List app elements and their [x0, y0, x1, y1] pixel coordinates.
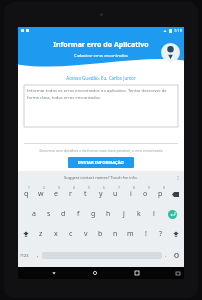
button[interactable]: Back — [49, 268, 59, 278]
button[interactable]: g — [86, 204, 101, 224]
staticText: Informar erro do Aplicativo — [53, 40, 149, 50]
staticText: r — [69, 189, 72, 199]
button[interactable]: d — [56, 204, 71, 224]
button[interactable]: r — [63, 184, 78, 204]
button[interactable]: h — [101, 204, 116, 224]
button[interactable]: ? — [153, 224, 168, 244]
staticText: Descreva com detalhes e da forma mais cl… — [24, 148, 178, 153]
staticText: d — [61, 209, 66, 219]
button[interactable]: Ponto — [162, 246, 170, 265]
staticText: 2 — [43, 186, 45, 190]
button[interactable]: i — [123, 184, 138, 204]
staticText: z — [39, 229, 43, 239]
button[interactable]: Teclado — [174, 269, 182, 277]
button[interactable]: Shift — [168, 224, 183, 244]
button[interactable]: x — [48, 224, 63, 244]
button[interactable]: Emoji — [170, 246, 182, 265]
button[interactable]: ! — [138, 224, 153, 244]
staticText: u — [113, 189, 118, 199]
staticText: v — [84, 229, 88, 239]
staticText: Suggest contact names? Touch for info. — [64, 175, 138, 180]
staticText: n — [113, 229, 118, 239]
button[interactable]: j — [116, 204, 131, 224]
staticText: s — [47, 209, 51, 219]
button[interactable]: n — [108, 224, 123, 244]
button[interactable]: m — [123, 224, 138, 244]
button[interactable]: a — [26, 204, 41, 224]
button[interactable]: f — [71, 204, 86, 224]
staticText: k — [137, 209, 141, 219]
button[interactable]: Perfil do usuário — [161, 43, 180, 62]
button[interactable]: u — [108, 184, 123, 204]
staticText: ?123 — [20, 253, 29, 258]
staticText: x — [54, 229, 58, 239]
staticText: l — [153, 209, 155, 219]
button[interactable]: w — [33, 184, 48, 204]
button[interactable]: b — [93, 224, 108, 244]
button[interactable]: z — [33, 224, 48, 244]
staticText: 7 — [118, 186, 120, 190]
button[interactable]: Enter — [161, 204, 183, 224]
button[interactable]: q — [19, 184, 33, 204]
staticText: ENVIAR INFORMAÇÃO — [78, 160, 124, 166]
staticText: i — [130, 189, 132, 199]
button[interactable]: e — [48, 184, 63, 204]
button[interactable]: t — [78, 184, 93, 204]
staticText: ? — [159, 229, 163, 239]
button[interactable]: l — [146, 204, 161, 224]
staticText: . — [165, 252, 167, 259]
button[interactable]: Opções do teclado — [175, 175, 181, 181]
button[interactable]: Vírgula — [34, 246, 42, 265]
button[interactable]: s — [41, 204, 56, 224]
staticText: o — [143, 189, 148, 199]
staticText: t — [84, 189, 87, 199]
staticText: Acesso Guedão. Eu, Carlos Junior — [24, 75, 178, 81]
staticText: 0 — [163, 186, 165, 190]
button[interactable]: ?123 — [20, 246, 34, 265]
button[interactable]: Backspace — [168, 184, 183, 204]
button[interactable]: c — [63, 224, 78, 244]
button[interactable]: y — [93, 184, 108, 204]
staticText: ! — [145, 229, 147, 239]
staticText: 8 — [133, 186, 135, 190]
button[interactable]: p — [153, 184, 168, 204]
staticText: m — [127, 229, 134, 239]
staticText: e — [54, 189, 58, 199]
staticText: 5 — [88, 186, 90, 190]
staticText: 6 — [103, 186, 105, 190]
staticText: g — [91, 209, 96, 219]
button[interactable]: v — [78, 224, 93, 244]
staticText: , — [37, 252, 39, 259]
staticText: 4 — [73, 186, 75, 190]
button[interactable]: k — [131, 204, 146, 224]
staticText: Informar todos os erros encontrados no a… — [27, 88, 175, 100]
staticText: a — [32, 209, 36, 219]
staticText: q — [24, 189, 29, 199]
button[interactable]: ENVIAR INFORMAÇÃO — [68, 157, 134, 168]
staticText: 3 — [58, 186, 60, 190]
staticText: c — [69, 229, 73, 239]
button[interactable]: Home — [90, 268, 100, 278]
button[interactable]: o — [138, 184, 153, 204]
staticText: Cadastrar erros encontrados — [74, 53, 128, 58]
staticText: f — [77, 209, 80, 219]
staticText: p — [158, 189, 163, 199]
staticText: 9 — [148, 186, 150, 190]
staticText: j — [123, 209, 125, 219]
staticText: w — [38, 189, 44, 199]
staticText: 7:19 — [174, 28, 182, 33]
staticText: b — [98, 229, 103, 239]
button[interactable]: Informar todos os erros encontrados no a… — [24, 85, 178, 127]
staticText: 1 — [28, 186, 30, 190]
staticText: y — [99, 189, 103, 199]
staticText: h — [106, 209, 111, 219]
button[interactable]: Recents — [132, 268, 142, 278]
button[interactable]: Shift — [19, 224, 33, 244]
